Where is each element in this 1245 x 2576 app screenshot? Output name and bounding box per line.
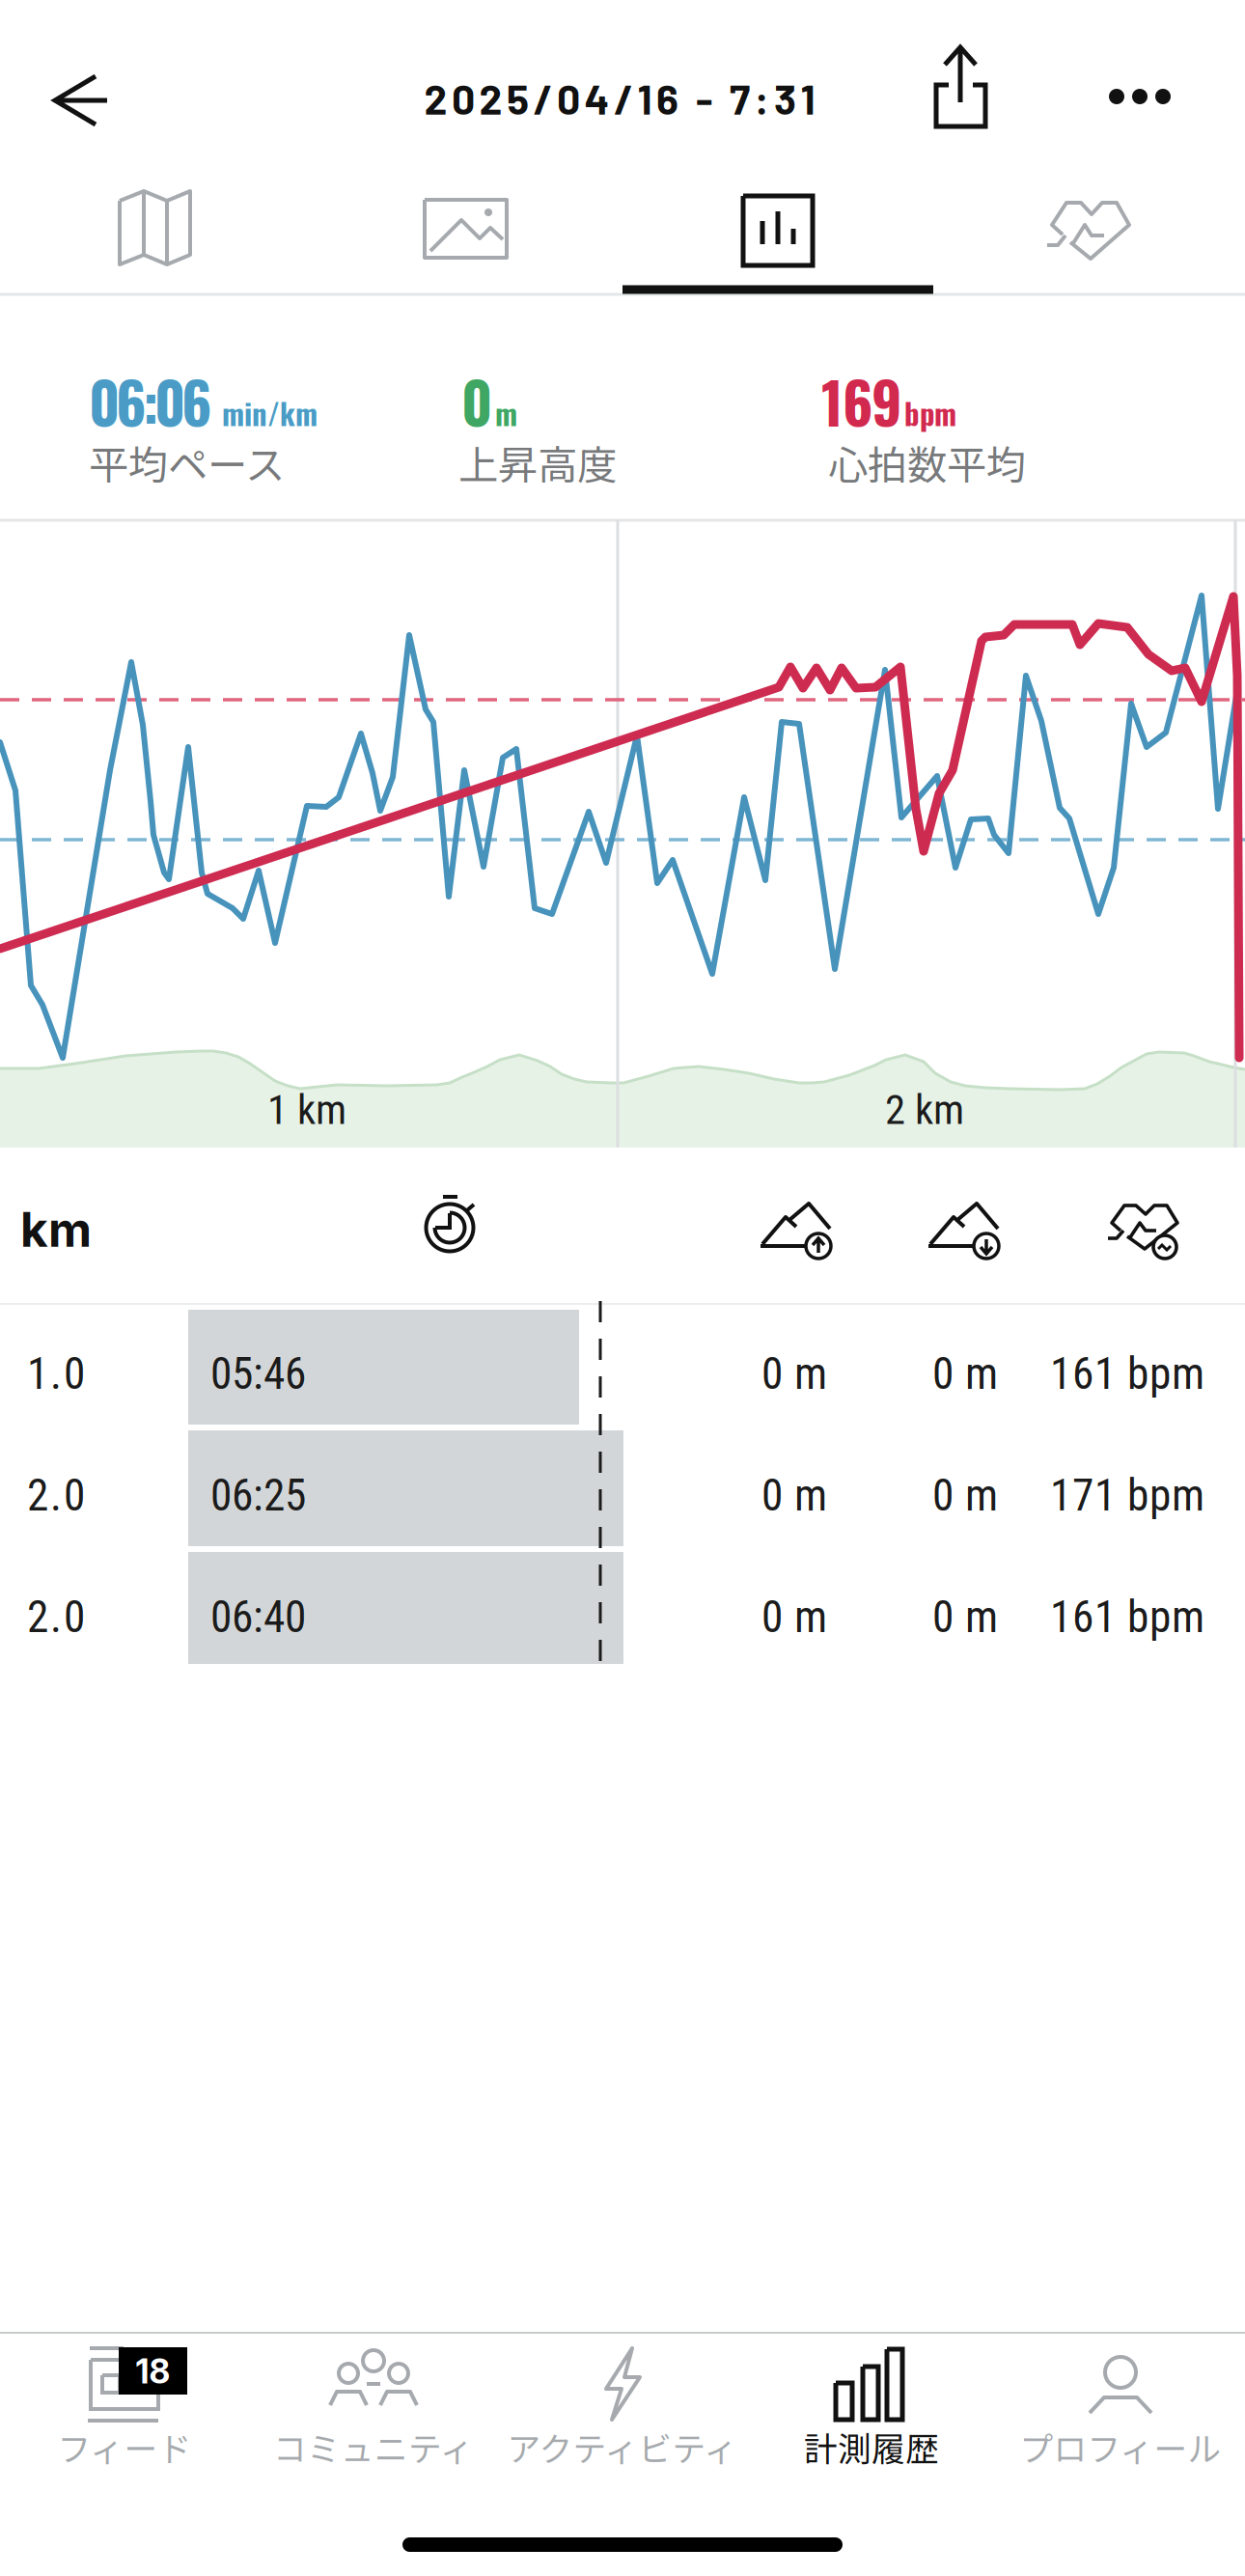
button[interactable]: コミュニティ [249,2334,1245,2576]
button[interactable]: Map [0,174,1245,2576]
staticText: 171 bpm [1050,1470,1204,1521]
staticText: 心拍数平均 [828,433,1026,491]
staticText: 2025/04/16 - 7:31 [424,73,815,123]
staticText: 1.0 [27,1348,85,1400]
staticText: 161 bpm [1050,1592,1204,1643]
button[interactable]: 計測履歴 [747,2334,1245,2576]
button[interactable]: プロフィール [996,2334,1245,2576]
staticText: アクティビティ [507,2423,738,2471]
staticText: 2.0 [27,1592,85,1643]
staticText: 上昇高度 [458,433,617,491]
staticText: 0 m [932,1348,998,1400]
staticText: 06:06 [89,359,212,443]
staticText: bpm [904,391,956,435]
staticText: 06:40 [210,1592,306,1643]
staticText: 18 [136,2351,170,2392]
button[interactable]: アクティビティ [498,2334,1245,2576]
staticText: 2 km [885,1086,964,1134]
button[interactable]: Back [29,58,1245,2576]
staticText: 0 [461,359,492,443]
staticText: フィード [57,2423,192,2471]
staticText: 0 m [761,1592,827,1643]
staticText: 05:46 [210,1348,306,1400]
staticText: 計測履歴 [804,2423,939,2471]
staticText: 0 m [932,1592,998,1643]
staticText: 0 m [761,1470,827,1521]
button[interactable]: More [1095,72,1245,2576]
staticText: min/km [222,391,318,435]
staticText: 2.0 [27,1470,85,1521]
staticText: コミュニティ [273,2423,474,2471]
button[interactable]: Heart rate [933,174,1245,2576]
staticText: m [495,391,517,435]
button[interactable]: 18 [0,2334,1245,2576]
button[interactable]: Photos [311,174,1245,2576]
staticText: 1 km [267,1086,346,1134]
staticText: 169 [821,359,902,443]
staticText: 06:25 [210,1470,306,1521]
staticText: プロフィール [1020,2423,1221,2471]
staticText: 0 m [761,1348,827,1400]
staticText: km [20,1201,92,1258]
staticText: 0 m [932,1470,998,1521]
staticText: 161 bpm [1050,1348,1204,1400]
button[interactable]: Share [917,39,1245,2576]
button[interactable]: Statistics [622,174,1245,2576]
staticText: 平均ペース [89,433,285,491]
